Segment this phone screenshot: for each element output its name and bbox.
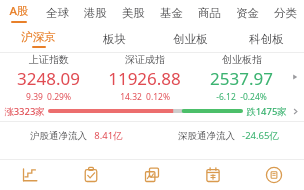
button[interactable]: Watchlist xyxy=(60,166,121,184)
button[interactable]: 创业板 xyxy=(152,32,228,46)
staticText: 2537.97 xyxy=(210,67,273,90)
staticText: 美股 xyxy=(122,6,145,20)
staticText: -0.24% xyxy=(240,91,267,101)
staticText: 资金 xyxy=(236,6,259,20)
staticText: 深股通净流入 xyxy=(178,130,235,142)
button[interactable]: 沪深京 xyxy=(0,30,76,48)
staticText: -24.65亿 xyxy=(242,129,279,142)
staticText: 8.41亿 xyxy=(94,129,123,142)
staticText: 9.39 xyxy=(26,91,43,101)
staticText: 分类 xyxy=(274,6,297,20)
staticText: 创业板指 xyxy=(222,53,262,66)
button[interactable]: 涨3323家 xyxy=(0,101,304,121)
staticText: 上证指数 xyxy=(29,53,69,66)
staticText: 涨3323家 xyxy=(4,105,45,118)
button[interactable]: 科创板 xyxy=(228,32,304,46)
button[interactable]: Trade xyxy=(243,166,304,184)
staticText: 沪股通净流入 xyxy=(30,130,87,142)
button[interactable]: 深证成指 xyxy=(96,53,193,101)
button[interactable]: Market chart xyxy=(0,166,60,184)
button[interactable]: 板块 xyxy=(76,32,152,46)
staticText: 基金 xyxy=(160,6,183,20)
button[interactable]: 全球 xyxy=(38,6,76,20)
other: More indices xyxy=(290,72,300,82)
other: Details xyxy=(291,107,300,116)
staticText: 科创板 xyxy=(249,32,284,46)
button[interactable]: 商品 xyxy=(190,6,228,20)
staticText: 0.12% xyxy=(146,91,170,101)
button[interactable]: 上证指数 xyxy=(0,53,96,101)
staticText: 14.32 xyxy=(120,91,142,101)
staticText: 沪深京 xyxy=(21,30,56,44)
button[interactable]: Calendar xyxy=(182,166,243,184)
button[interactable]: A股 xyxy=(0,3,38,23)
staticText: 港股 xyxy=(84,6,107,20)
button[interactable]: 港股 xyxy=(76,6,114,20)
button[interactable]: 深股通净流入 xyxy=(152,129,304,142)
staticText: 跌1475家 xyxy=(246,105,287,118)
button[interactable]: 沪股通净流入 xyxy=(0,129,152,142)
button[interactable]: Portfolio xyxy=(121,166,182,184)
staticText: 深证成指 xyxy=(125,53,165,66)
staticText: 3248.09 xyxy=(17,67,80,90)
staticText: -6.12 xyxy=(216,91,236,101)
staticText: 板块 xyxy=(103,32,126,46)
staticText: A股 xyxy=(9,3,29,19)
staticText: 商品 xyxy=(198,6,221,20)
button[interactable]: 美股 xyxy=(114,6,152,20)
button[interactable]: 资金 xyxy=(228,6,266,20)
button[interactable]: 分类 xyxy=(266,6,304,20)
staticText: 11926.88 xyxy=(108,67,181,90)
staticText: 创业板 xyxy=(173,32,208,46)
button[interactable]: 创业板指 xyxy=(193,53,290,101)
button[interactable]: 基金 xyxy=(152,6,190,20)
staticText: 全球 xyxy=(46,6,69,20)
staticText: 0.29% xyxy=(47,91,71,101)
